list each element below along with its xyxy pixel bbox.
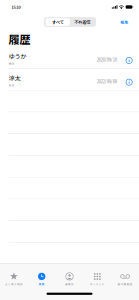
staticText: 履歴 [39, 282, 45, 286]
staticText: よく使う項目 [5, 282, 23, 286]
button[interactable]: キーパッド [83, 269, 111, 290]
staticText: 2020/09/10 [97, 56, 117, 63]
staticText: 留守番電話 [118, 282, 133, 286]
button[interactable]: 詳細情報 [125, 78, 134, 87]
button[interactable]: 詳細情報 [125, 56, 134, 65]
staticText: 携帯 [8, 61, 14, 65]
staticText: 不在着信 [74, 19, 90, 25]
staticText: 涼太 [8, 73, 20, 82]
staticText: 編集 [120, 19, 128, 25]
staticText: 15:10 [11, 4, 20, 10]
button[interactable]: ゆうか [0, 47, 139, 68]
button[interactable]: 涼太 [0, 69, 139, 90]
staticText: 自宅 [8, 83, 14, 87]
button[interactable]: 連絡先 [56, 269, 83, 290]
button[interactable]: 履歴 [28, 269, 56, 290]
staticText: すべて [52, 19, 64, 25]
staticText: キーパッド [90, 282, 105, 286]
staticText: 履歴 [8, 31, 30, 47]
button[interactable]: 留守番電話 [111, 269, 139, 290]
button[interactable]: 編集 [120, 16, 139, 28]
button[interactable]: 不在着信 [70, 18, 94, 26]
staticText: ゆうか [8, 52, 26, 60]
button[interactable]: よく使う項目 [0, 269, 28, 290]
staticText: 連絡先 [65, 282, 74, 286]
staticText: 2022/09/09 [97, 78, 117, 84]
button[interactable]: すべて [46, 18, 70, 26]
